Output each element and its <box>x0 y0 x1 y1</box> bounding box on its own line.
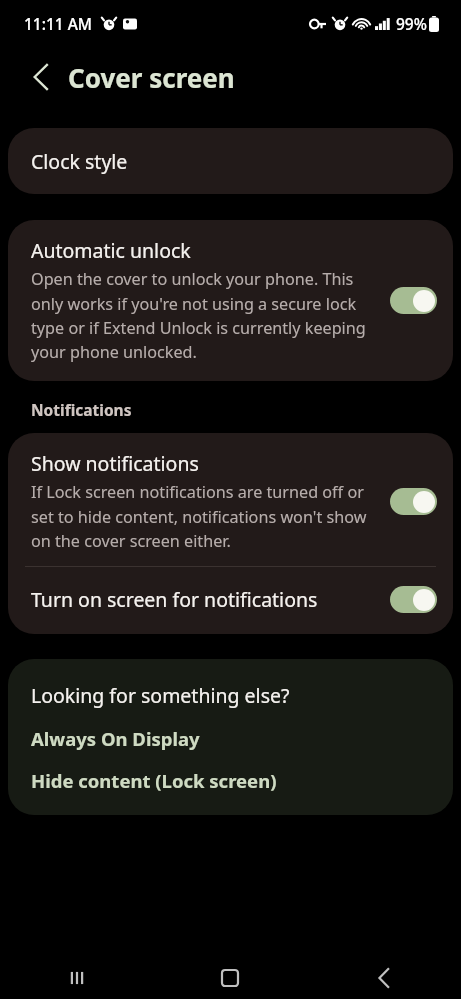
button[interactable]: Toggle on <box>390 488 437 515</box>
staticText: Turn on screen for notifications <box>31 586 318 613</box>
button[interactable]: Hide content (Lock screen) <box>31 768 277 793</box>
staticText: If Lock screen notifications are turned … <box>31 481 382 552</box>
staticText: Looking for something else? <box>31 682 290 709</box>
staticText: Notifications <box>31 399 132 420</box>
staticText: Clock style <box>31 148 128 175</box>
button[interactable]: Automatic unlock <box>8 220 453 381</box>
button[interactable]: Turn on screen for notifications <box>8 567 453 634</box>
staticText: Automatic unlock <box>31 237 191 264</box>
button[interactable]: Toggle on <box>390 287 437 314</box>
staticText: Open the cover to unlock your phone. Thi… <box>31 268 382 363</box>
staticText: Hide content (Lock screen) <box>31 768 277 793</box>
staticText: Always On Display <box>31 726 200 751</box>
staticText: Show notifications <box>31 450 199 477</box>
button[interactable]: Always On Display <box>31 726 200 751</box>
button[interactable]: Toggle on <box>390 586 437 613</box>
button[interactable]: Back <box>22 58 60 96</box>
button[interactable]: Recents <box>49 957 105 999</box>
staticText: 99% <box>396 13 427 34</box>
button[interactable]: Clock style <box>8 128 453 194</box>
staticText: Cover screen <box>68 60 235 95</box>
button[interactable]: Show notifications <box>8 433 453 566</box>
button[interactable]: Back <box>356 957 412 999</box>
staticText: 11:11 AM <box>24 13 93 34</box>
button[interactable]: Home <box>202 957 258 999</box>
